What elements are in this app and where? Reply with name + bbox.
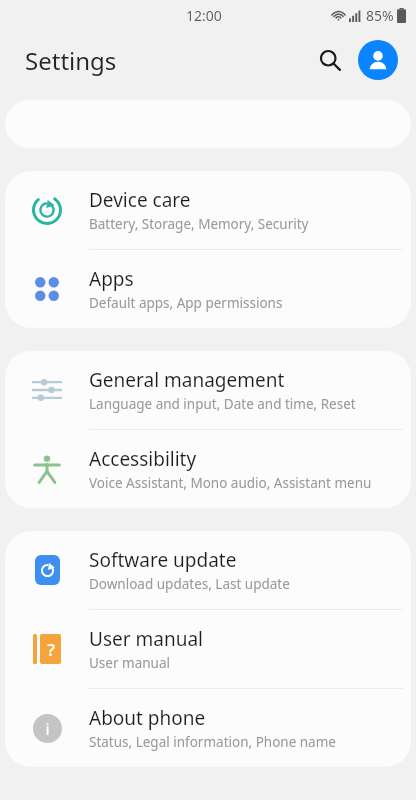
button[interactable]: Account <box>358 40 398 80</box>
button[interactable]: Device care <box>5 171 411 250</box>
staticText: 85% <box>366 6 394 25</box>
staticText: 12:00 <box>186 6 222 25</box>
staticText: Settings <box>25 44 117 77</box>
button[interactable]: General management <box>5 351 411 430</box>
staticText: User manual <box>89 626 203 652</box>
button[interactable]: Accessibility <box>5 430 411 508</box>
staticText: Battery, Storage, Memory, Security <box>89 215 309 233</box>
staticText: Voice Assistant, Mono audio, Assistant m… <box>89 474 372 492</box>
staticText: About phone <box>89 705 206 731</box>
staticText: Accessibility <box>89 446 197 472</box>
staticText: General management <box>89 367 285 393</box>
staticText: Status, Legal information, Phone name <box>89 733 336 751</box>
button[interactable]: i <box>5 689 411 767</box>
staticText: ? <box>47 638 55 661</box>
staticText: Default apps, App permissions <box>89 294 283 312</box>
staticText: User manual <box>89 654 170 672</box>
staticText: i <box>45 718 50 740</box>
staticText: Apps <box>89 266 134 292</box>
button[interactable]: Software update <box>5 531 411 610</box>
staticText: Device care <box>89 187 191 213</box>
button[interactable]: Search <box>308 38 352 82</box>
staticText: Download updates, Last update <box>89 575 290 593</box>
staticText: Language and input, Date and time, Reset <box>89 395 356 413</box>
button[interactable]: ? <box>5 610 411 689</box>
staticText: Software update <box>89 547 237 573</box>
button[interactable]: Apps <box>5 250 411 328</box>
